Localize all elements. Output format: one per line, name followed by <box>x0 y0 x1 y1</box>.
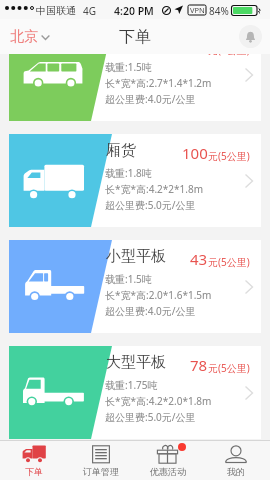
staticText: 长*宽*高:2.0*1.6*1.5m <box>105 288 212 302</box>
staticText: 下单 <box>119 27 151 47</box>
staticText: 元(5公里) <box>208 149 250 163</box>
button[interactable]: 面包车 <box>9 54 261 121</box>
staticText: 元(5公里) <box>208 54 250 57</box>
staticText: 超公里费:5.0元/公里 <box>105 410 196 424</box>
staticText: 我的 <box>227 466 245 477</box>
button[interactable]: 订单管理 <box>67 441 134 480</box>
staticText: 小型平板 <box>106 247 166 266</box>
staticText: 长*宽*高:4.2*2.0*1.8m <box>105 394 212 408</box>
staticText: 长*宽*高:4.2*2*1.8m <box>105 182 204 196</box>
staticText: 订单管理 <box>83 466 119 477</box>
button[interactable]: 下单 <box>0 441 67 480</box>
staticText: 78 <box>190 355 208 375</box>
staticText: 北京 <box>10 28 38 46</box>
staticText: 100 <box>182 143 208 163</box>
staticText: 超公里费:4.0元/公里 <box>105 304 196 318</box>
button[interactable]: 小型平板 <box>9 240 261 333</box>
staticText: 43 <box>190 249 208 269</box>
staticText: 84% <box>209 4 229 18</box>
button[interactable]: 厢货 <box>9 134 261 227</box>
staticText: 厢货 <box>106 141 136 160</box>
staticText: 元(5公里) <box>208 361 250 375</box>
button[interactable]: 通知 <box>239 25 262 48</box>
button[interactable]: 优惠活动 <box>134 441 202 480</box>
staticText: 载重:1.5吨 <box>105 272 152 286</box>
staticText: 超公里费:5.0元/公里 <box>105 198 196 212</box>
staticText: 载重:1.5吨 <box>105 60 152 74</box>
staticText: VPN <box>190 5 205 15</box>
button[interactable]: 我的 <box>202 441 270 480</box>
staticText: 中国联通 <box>36 4 76 17</box>
staticText: 长*宽*高:2.7*1.4*1.2m <box>105 76 212 90</box>
staticText: 超公里费:4.0元/公里 <box>105 92 196 106</box>
staticText: 4G <box>83 4 96 18</box>
staticText: 大型平板 <box>106 353 166 372</box>
staticText: 优惠活动 <box>150 466 186 477</box>
staticText: 4:20 PM <box>114 4 154 18</box>
staticText: 下单 <box>25 466 43 477</box>
staticText: 载重:1.8吨 <box>105 166 152 180</box>
staticText: 元(5公里) <box>208 255 250 269</box>
button[interactable]: 北京 <box>10 19 50 54</box>
staticText: 载重:1.75吨 <box>105 378 158 392</box>
button[interactable]: 大型平板 <box>9 346 261 439</box>
